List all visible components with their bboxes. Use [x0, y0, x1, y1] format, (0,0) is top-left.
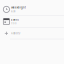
staticText: 7:00 — [11, 22, 17, 25]
staticText: Add city — [11, 32, 20, 35]
staticText: 6:30 — [11, 10, 16, 13]
button[interactable]: Weeknight — [0, 4, 64, 15]
button[interactable]: Event — [0, 16, 64, 27]
staticText: Event — [11, 18, 19, 21]
staticText: Weeknight — [11, 6, 26, 9]
button[interactable]: Add city — [0, 28, 64, 39]
